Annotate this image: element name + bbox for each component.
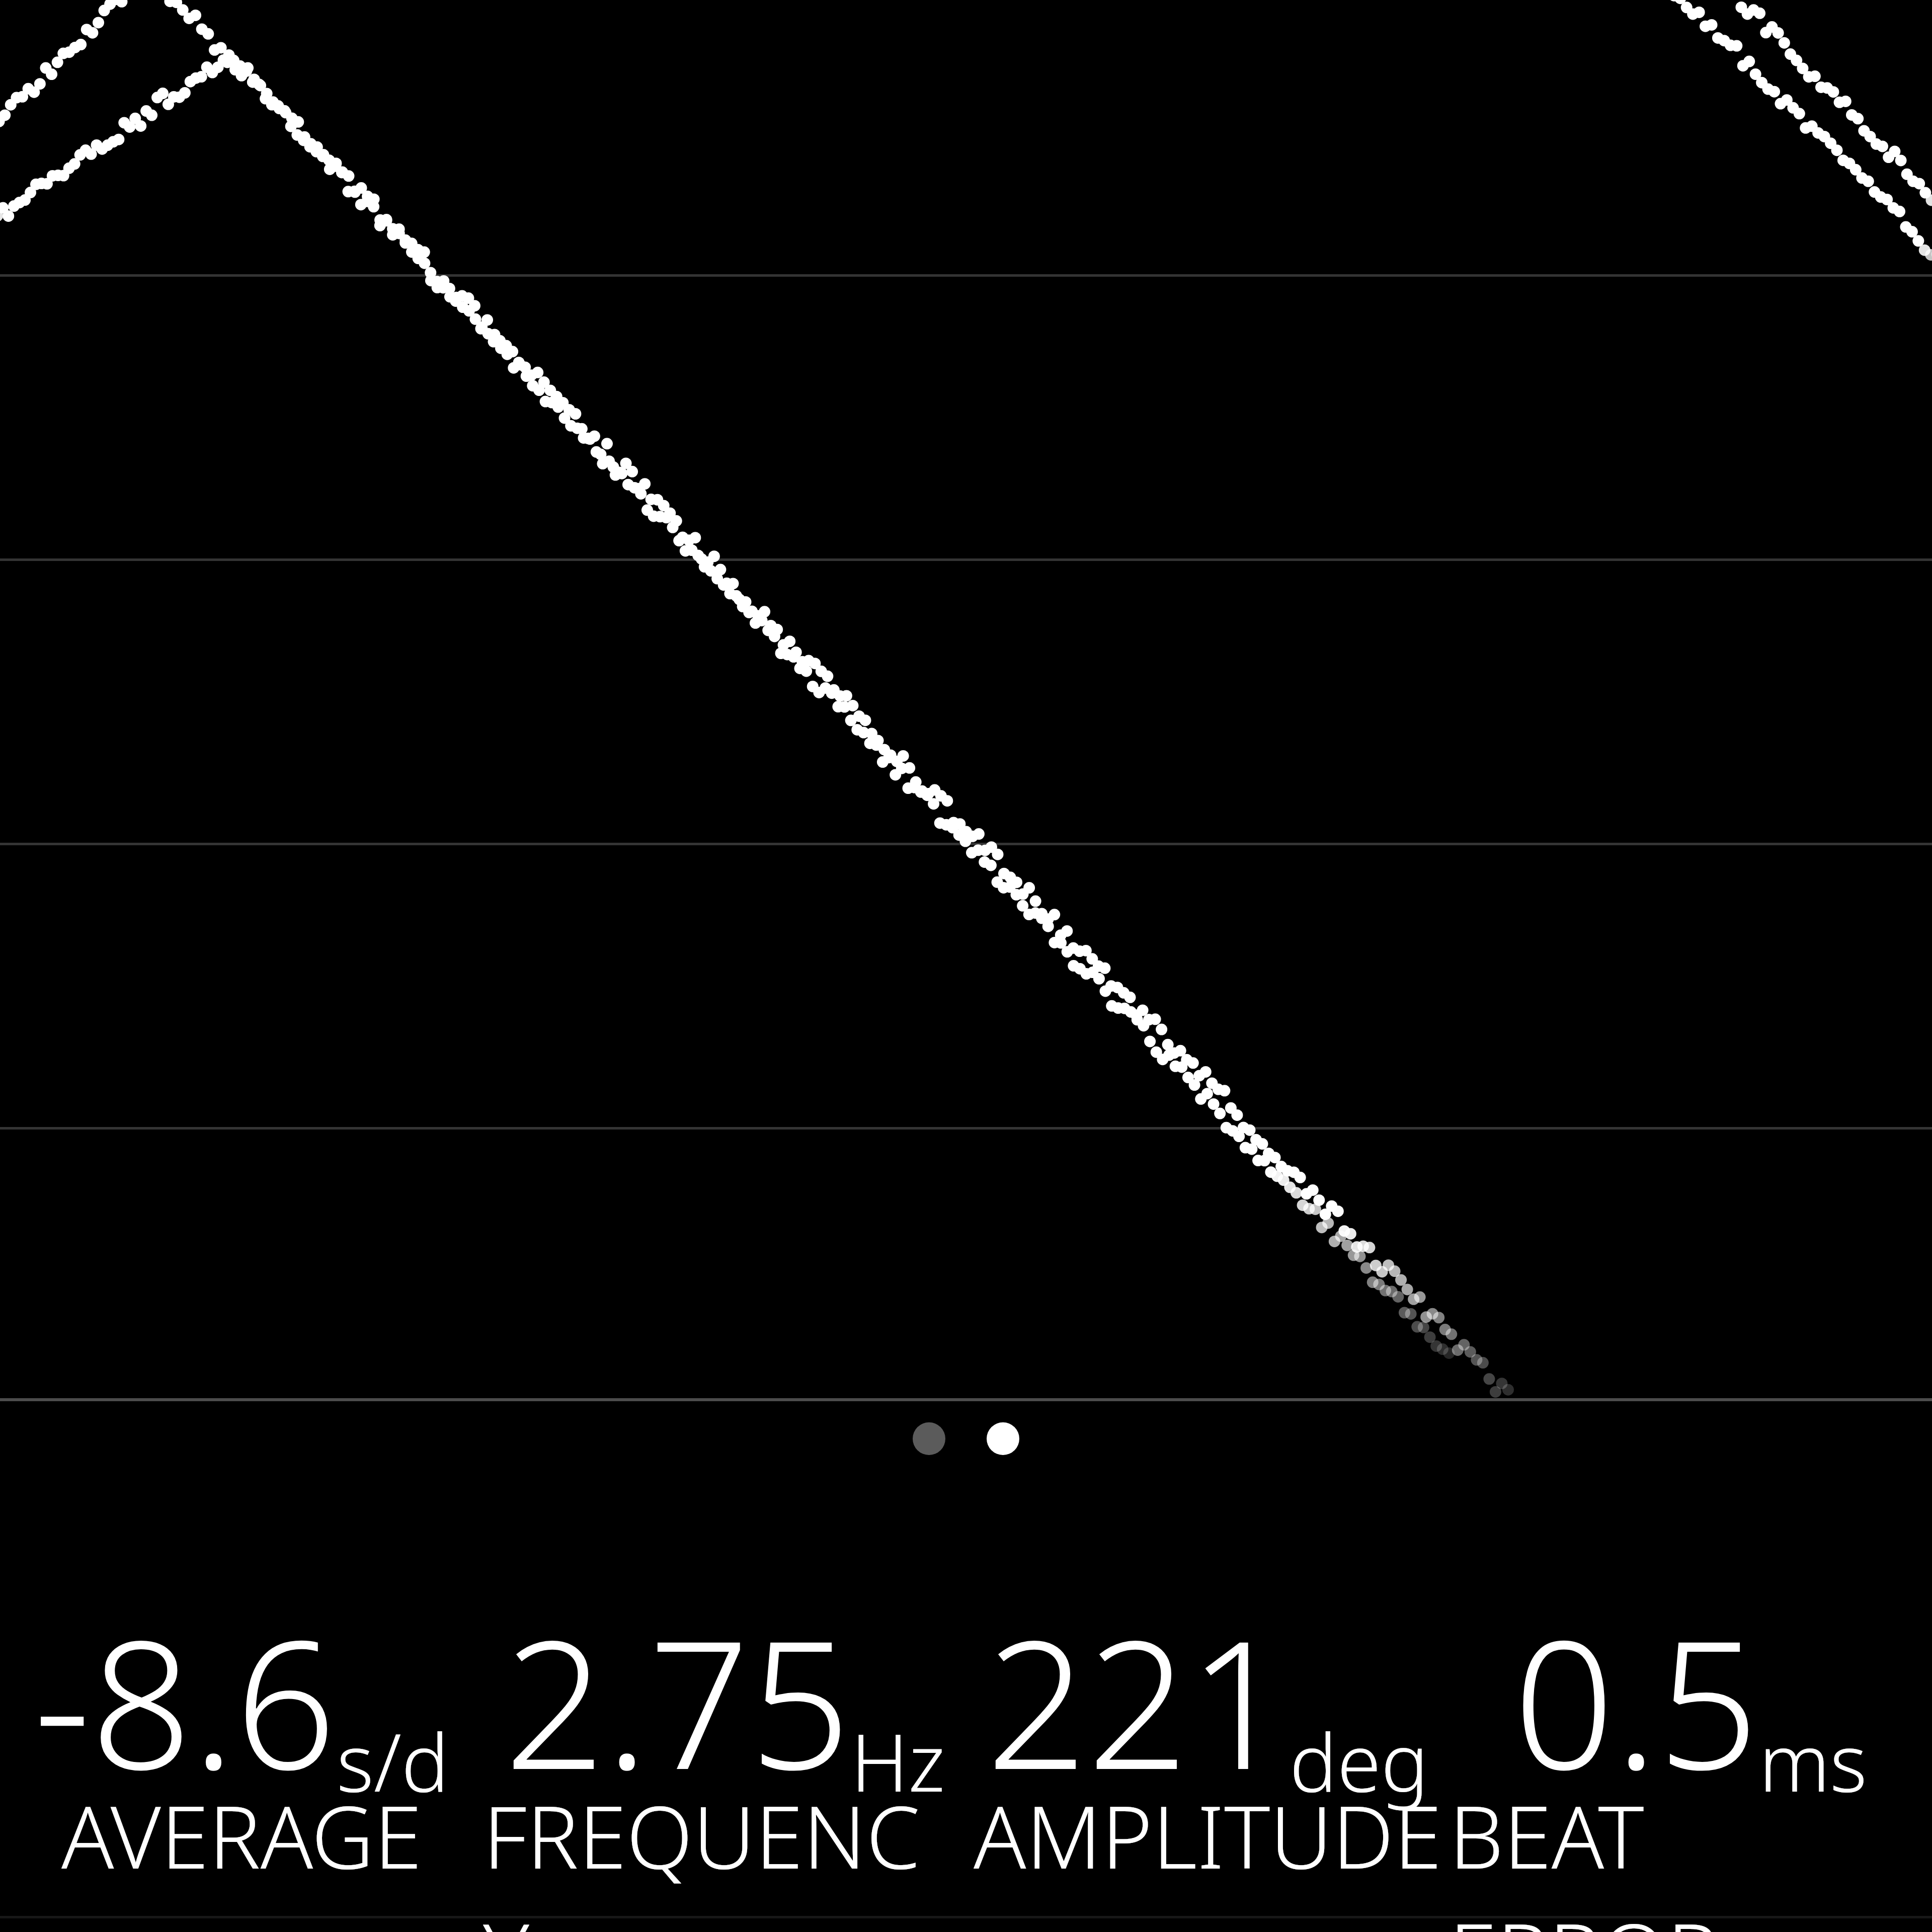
button[interactable]: 221: [966, 1580, 1449, 1892]
staticText: deg: [1290, 1707, 1429, 1815]
staticText: Hz: [851, 1707, 945, 1815]
staticText: 2.75: [504, 1580, 851, 1821]
button[interactable]: 0.5: [1449, 1580, 1932, 1892]
staticText: -8.6: [34, 1580, 337, 1821]
staticText: 0.5: [1513, 1580, 1759, 1821]
button[interactable]: -8.6: [0, 1580, 483, 1892]
staticText: s/d: [337, 1707, 449, 1815]
button[interactable]: 2.75: [483, 1580, 966, 1892]
staticText: AVERAGE: [61, 1776, 422, 1894]
staticText: ms: [1759, 1707, 1868, 1815]
staticText: BEAT ERROR: [1449, 1776, 1932, 1932]
button[interactable]: Watch timing trace graph: [0, 0, 1932, 1932]
staticText: FREQUENCY: [483, 1776, 966, 1932]
staticText: 221: [986, 1580, 1290, 1821]
button[interactable]: Page 2 of 2: [0, 1422, 1932, 1483]
staticText: AMPLITUDE: [974, 1776, 1442, 1894]
